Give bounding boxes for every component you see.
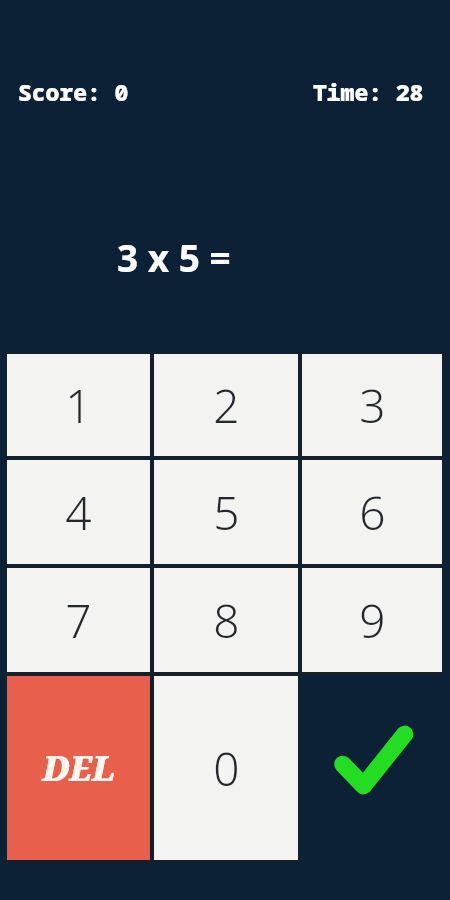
button[interactable]: 8 bbox=[152, 566, 300, 674]
staticText: 0 bbox=[213, 737, 240, 800]
button[interactable]: 3 bbox=[300, 352, 444, 458]
staticText: 2 bbox=[213, 374, 240, 437]
button[interactable]: 9 bbox=[300, 566, 444, 674]
button[interactable]: 7 bbox=[5, 566, 152, 674]
button[interactable]: 0 bbox=[152, 674, 300, 862]
button[interactable]: 2 bbox=[152, 352, 300, 458]
button[interactable]: DEL bbox=[5, 674, 152, 862]
staticText: 4 bbox=[65, 481, 92, 544]
staticText: 5 bbox=[213, 481, 240, 544]
button[interactable]: 1 bbox=[5, 352, 152, 458]
button[interactable]: 5 bbox=[152, 458, 300, 566]
staticText: 6 bbox=[359, 481, 386, 544]
staticText: DEL bbox=[42, 745, 115, 791]
staticText: Score: 0 bbox=[18, 76, 129, 107]
staticText: 8 bbox=[213, 589, 240, 652]
staticText: 3 x 5 = bbox=[117, 232, 231, 282]
staticText: 1 bbox=[65, 374, 92, 437]
staticText: Time: 28 bbox=[313, 76, 424, 107]
staticText: 9 bbox=[359, 589, 386, 652]
staticText: 3 bbox=[359, 374, 386, 437]
button[interactable]: Submit answer bbox=[300, 674, 444, 862]
button[interactable]: 4 bbox=[5, 458, 152, 566]
button[interactable]: 6 bbox=[300, 458, 444, 566]
staticText: 7 bbox=[65, 589, 92, 652]
